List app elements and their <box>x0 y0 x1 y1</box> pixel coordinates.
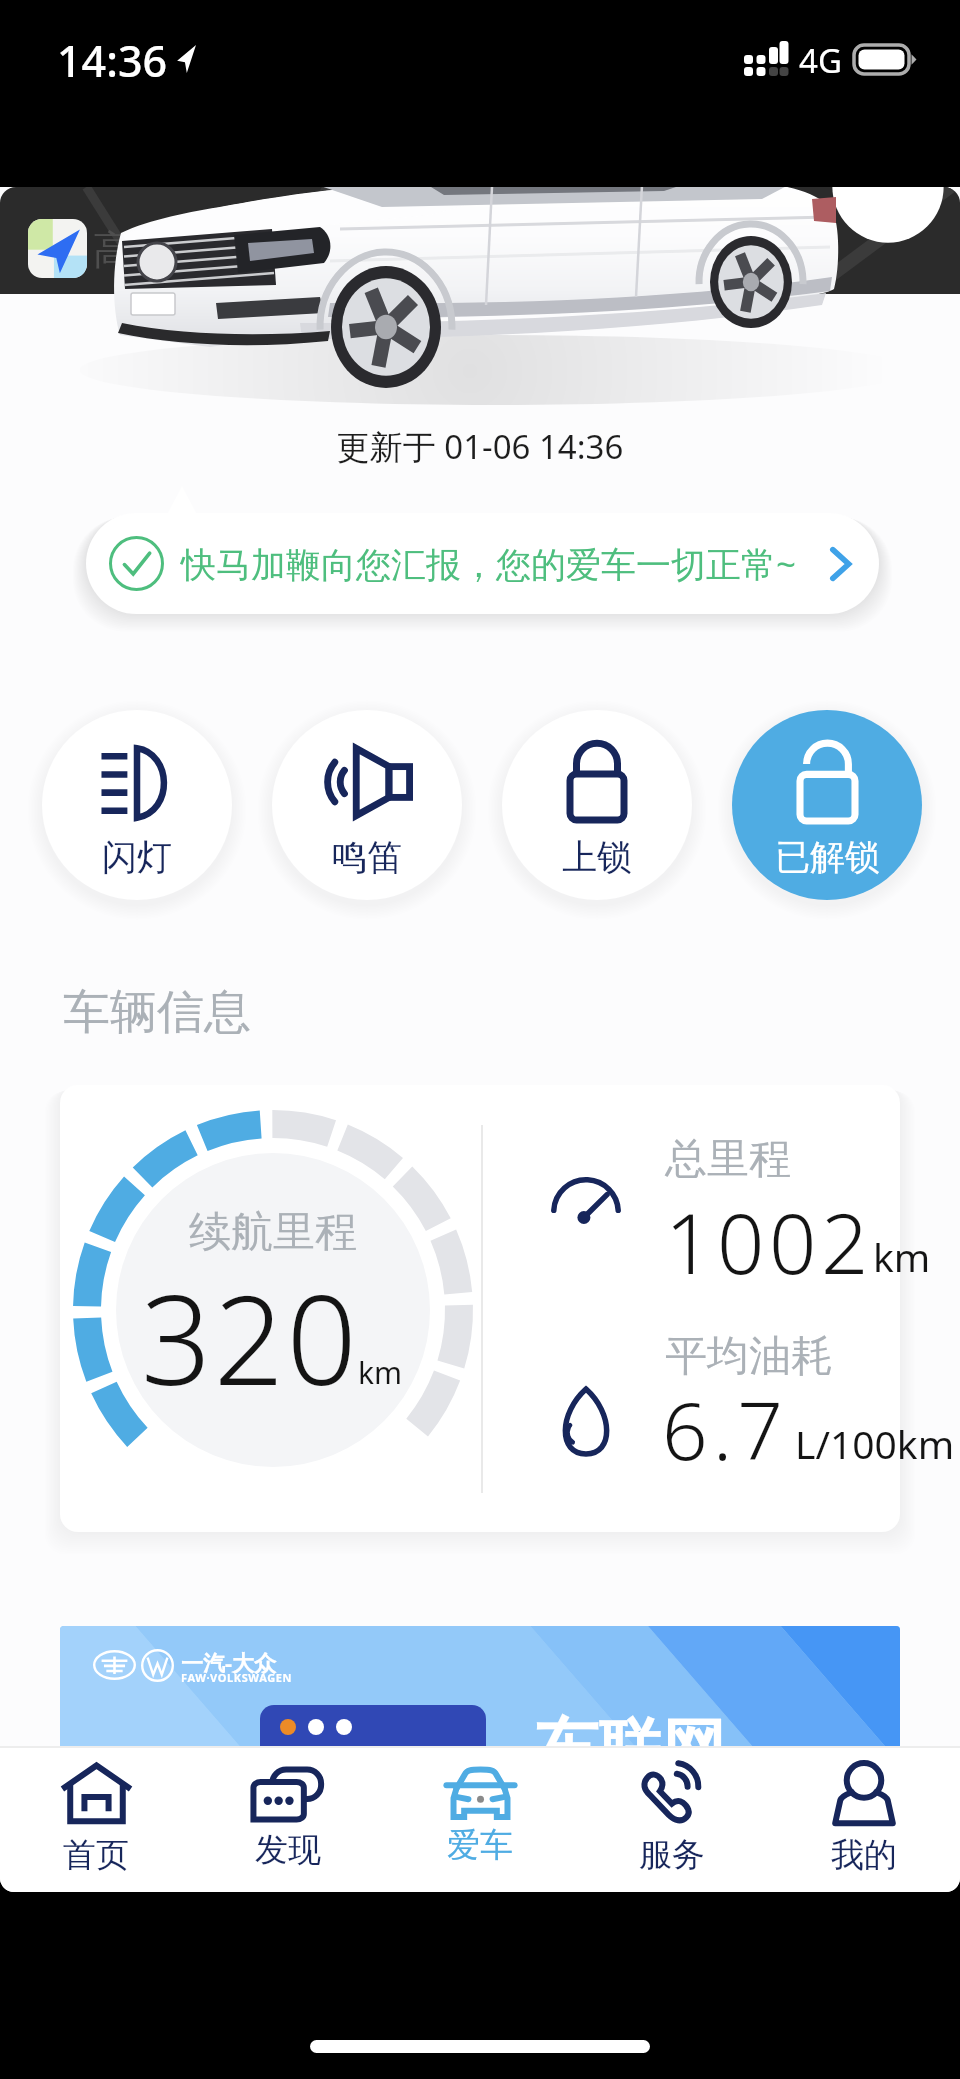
staticText: 我的 <box>831 1834 897 1876</box>
button[interactable]: Honk horn <box>272 710 462 900</box>
staticText: 总里程 <box>665 1133 791 1186</box>
staticText: 闪灯 <box>102 835 172 879</box>
button[interactable]: Unlocked <box>732 710 922 900</box>
staticText: 更新于 01-06 14:36 <box>0 424 960 469</box>
button[interactable]: 首页 <box>0 1746 192 1892</box>
staticText: 320 <box>141 1254 360 1422</box>
button[interactable] <box>60 1085 900 1532</box>
staticText: 车联网 <box>536 1709 725 1776</box>
staticText: 已解锁 <box>775 835 880 879</box>
button[interactable]: Flash lights <box>42 710 232 900</box>
staticText: 爱车 <box>447 1824 513 1866</box>
button[interactable]: 服务 <box>576 1746 768 1892</box>
staticText: 上锁 <box>562 835 632 879</box>
staticText: FAW·VOLKSWAGEN <box>181 1670 293 1685</box>
button[interactable]: 我的 <box>768 1746 960 1892</box>
staticText: 车辆信息 <box>63 983 251 1042</box>
staticText: 4G <box>799 38 842 83</box>
button[interactable]: 爱车 <box>384 1746 576 1892</box>
staticText: 1002 <box>665 1185 873 1298</box>
staticText: 平均油耗 <box>665 1330 833 1383</box>
button[interactable]: Lock car <box>502 710 692 900</box>
staticText: km <box>873 1230 931 1283</box>
staticText: 发现 <box>255 1829 321 1871</box>
staticText: 高 <box>93 225 133 275</box>
staticText: 快马加鞭向您汇报，您的爱车一切正常~ <box>181 540 797 588</box>
staticText: 首页 <box>63 1834 129 1876</box>
button[interactable]: 发现 <box>192 1746 384 1892</box>
staticText: 服务 <box>639 1834 705 1876</box>
staticText: 6.7 <box>662 1374 788 1483</box>
staticText: km <box>358 1352 403 1393</box>
staticText: 鸣笛 <box>332 835 402 879</box>
staticText: 14:36 <box>57 31 168 90</box>
staticText: L/100km <box>795 1417 955 1470</box>
button[interactable]: 一汽-大众 <box>60 1626 900 1776</box>
staticText: 续航里程 <box>189 1206 357 1259</box>
staticText: 一汽-大众 <box>181 1647 277 1677</box>
button[interactable]: 快马加鞭向您汇报，您的爱车一切正常~ <box>86 513 879 614</box>
